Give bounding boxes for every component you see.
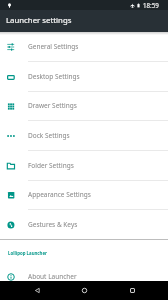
staticText: Appearance Settings (28, 190, 91, 199)
button[interactable]: Dock Settings (0, 121, 168, 151)
button[interactable]: About Launcher (0, 262, 168, 292)
staticText: General Settings (28, 42, 79, 51)
staticText: Desktop Settings (28, 72, 80, 81)
staticText: Launcher settings (6, 15, 72, 26)
staticText: Lollipop Launcher (8, 250, 48, 256)
staticText: Gestures & Keys (28, 220, 78, 229)
staticText: 18:59 (143, 1, 159, 9)
staticText: Dock Settings (28, 131, 70, 140)
button[interactable]: Appearance Settings (0, 180, 168, 210)
button[interactable]: Back (26, 281, 48, 300)
button[interactable]: Recent apps (121, 281, 143, 300)
button[interactable]: Gestures & Keys (0, 210, 168, 240)
button[interactable]: Folder Settings (0, 151, 168, 181)
button[interactable]: Desktop Settings (0, 62, 168, 92)
staticText: About Launcher (28, 272, 77, 281)
staticText: Folder Settings (28, 161, 74, 170)
button[interactable]: Drawer Settings (0, 91, 168, 121)
button[interactable]: Home (73, 281, 95, 300)
button[interactable]: General Settings (0, 32, 168, 62)
staticText: Drawer Settings (28, 101, 77, 110)
